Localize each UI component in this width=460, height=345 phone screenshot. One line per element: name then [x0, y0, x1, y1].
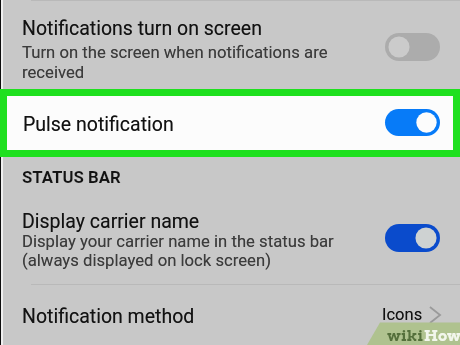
staticText: Display carrier name [22, 210, 200, 233]
staticText: Notification method [22, 305, 195, 328]
staticText: (always displayed on lock screen) [22, 251, 271, 271]
staticText: received [22, 63, 85, 83]
button[interactable] [0, 201, 460, 285]
staticText: Notification method [22, 305, 195, 328]
button[interactable]: Switch on [385, 109, 440, 136]
button[interactable]: Switch off [385, 33, 440, 61]
button[interactable]: Switch on [385, 224, 440, 252]
staticText: received [22, 63, 85, 83]
button[interactable] [0, 0, 460, 89]
button[interactable] [7, 96, 453, 150]
staticText: Icons [382, 305, 423, 324]
staticText: Display carrier name [22, 210, 200, 233]
staticText: (always displayed on lock screen) [22, 251, 271, 271]
staticText: Notifications turn on screen [22, 17, 262, 40]
staticText: Pulse notification [23, 113, 174, 136]
staticText: Pulse notification [23, 113, 174, 136]
staticText: Notifications turn on screen [22, 17, 262, 40]
staticText: Turn on the screen when notifications ar… [22, 43, 328, 63]
staticText: Turn on the screen when notifications ar… [22, 43, 328, 63]
staticText: STATUS BAR [22, 167, 121, 187]
staticText: Icons [382, 305, 423, 324]
staticText: Display your carrier name in the status … [22, 232, 334, 252]
staticText: How [424, 326, 460, 344]
staticText: wiki [387, 326, 424, 344]
staticText: Display your carrier name in the status … [22, 232, 334, 252]
other: Open Notification method [429, 307, 441, 323]
button[interactable] [0, 285, 460, 345]
